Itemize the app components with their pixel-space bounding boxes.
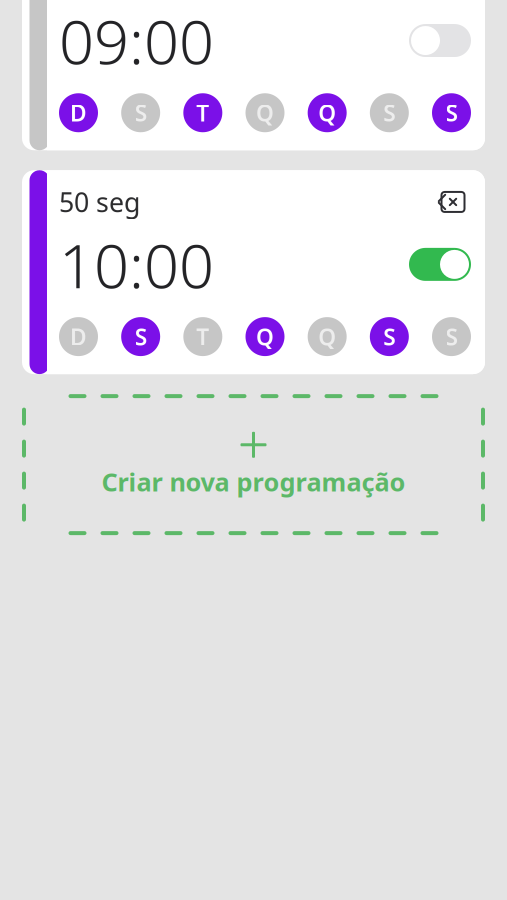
button[interactable]: Q [245,93,284,132]
staticText: Criar nova programação [101,465,405,498]
button[interactable]: D [59,317,98,356]
button[interactable]: S [121,93,160,132]
staticText: 50 seg [59,184,140,220]
staticText: Q [256,98,274,128]
staticText: D [70,322,87,352]
button[interactable]: S [121,317,160,356]
button[interactable]: S [370,317,409,356]
staticText: 10:00 [59,224,214,305]
staticText: S [383,322,395,352]
button[interactable]: Ativar programação [409,24,471,57]
button[interactable]: S [432,93,471,132]
staticText: Q [318,322,336,352]
staticText: Q [318,98,336,128]
button[interactable]: Q [308,93,347,132]
staticText: Q [256,322,274,352]
staticText: S [135,98,147,128]
button[interactable]: Excluir programação [429,186,471,218]
button[interactable]: T [183,93,222,132]
button[interactable]: T [183,317,222,356]
staticText: T [196,98,209,128]
button[interactable]: Q [308,317,347,356]
button[interactable]: Q [245,317,284,356]
button[interactable]: S [370,93,409,132]
staticText: T [196,322,209,352]
button[interactable]: Desativar programação [409,248,471,281]
staticText: S [445,98,457,128]
button[interactable]: D [59,93,98,132]
staticText: 09:00 [59,0,214,81]
staticText: D [70,98,87,128]
staticText: S [383,98,395,128]
staticText: S [135,322,147,352]
button[interactable]: Criar nova programação [22,394,485,535]
button[interactable]: S [432,317,471,356]
staticText: S [445,322,457,352]
